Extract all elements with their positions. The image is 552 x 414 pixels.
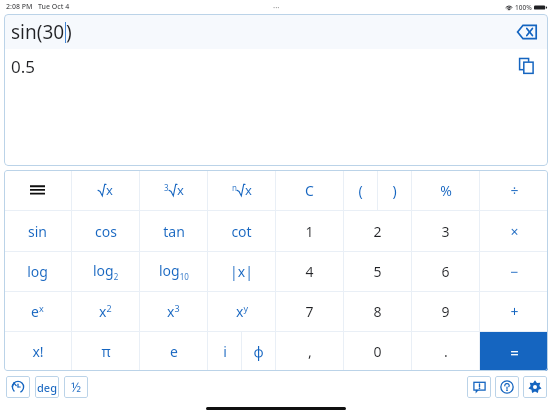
staticText: x2 (99, 302, 112, 321)
button[interactable]: i (208, 332, 241, 371)
button[interactable]: = (480, 332, 548, 371)
button[interactable]: Send feedback (467, 376, 491, 398)
button[interactable]: sin(30 (4, 14, 548, 49)
staticText: 7 (305, 302, 314, 321)
staticText: × (510, 222, 519, 241)
staticText: log (27, 262, 48, 281)
staticText: 0 (373, 342, 382, 361)
staticText: C (305, 181, 314, 200)
staticText: cot (231, 222, 252, 241)
staticText: i (223, 342, 227, 361)
button[interactable]: xy (208, 292, 275, 331)
button[interactable]: History (6, 376, 30, 398)
button[interactable]: Backspace (513, 18, 541, 46)
staticText: + (510, 302, 519, 321)
staticText: . (444, 342, 448, 361)
button[interactable]: + (480, 292, 548, 331)
button[interactable]: φ (242, 332, 275, 371)
button[interactable]: % (412, 170, 479, 210)
button[interactable]: 0 (344, 332, 411, 371)
button[interactable]: ex (4, 292, 71, 331)
staticText: 100% (515, 3, 532, 12)
staticText: cos (95, 222, 117, 241)
button[interactable]: 6 (412, 252, 479, 291)
staticText: sin (28, 222, 47, 241)
staticText: 0.5 (11, 55, 36, 78)
button[interactable]: sin (4, 211, 71, 251)
button[interactable]: x2 (72, 292, 139, 331)
staticText: x3 (167, 302, 180, 321)
button[interactable]: − (480, 252, 548, 291)
button[interactable]: ½ (64, 376, 88, 398)
staticText: 5 (373, 262, 382, 281)
button[interactable]: tan (140, 211, 207, 251)
staticText: ( (358, 181, 363, 200)
button[interactable]: . (412, 332, 479, 371)
button[interactable]: Menu (4, 170, 71, 210)
staticText: 6 (441, 262, 450, 281)
staticText: 2:08 PM (6, 2, 33, 12)
staticText: 2 (373, 222, 382, 241)
button[interactable]: , (276, 332, 343, 371)
button[interactable]: Cube root (140, 170, 207, 210)
button[interactable]: 9 (412, 292, 479, 331)
staticText: φ (253, 342, 264, 361)
staticText: ) (392, 181, 397, 200)
staticText: ex (31, 302, 44, 321)
button[interactable]: cot (208, 211, 275, 251)
button[interactable]: cos (72, 211, 139, 251)
staticText: Tue Oct 4 (38, 2, 70, 12)
button[interactable]: 7 (276, 292, 343, 331)
button[interactable]: |x| (208, 252, 275, 291)
staticText: 3 (164, 182, 169, 193)
button[interactable]: Nth root (208, 170, 275, 210)
staticText: tan (163, 222, 185, 241)
staticText: − (510, 262, 519, 281)
button[interactable]: Copy result (512, 52, 540, 80)
button[interactable]: 1 (276, 211, 343, 251)
button[interactable]: ÷ (480, 170, 548, 210)
button[interactable]: log10 (140, 252, 207, 291)
button[interactable]: 5 (344, 252, 411, 291)
button[interactable]: Help (495, 376, 519, 398)
staticText: ) (66, 19, 72, 45)
button[interactable]: x3 (140, 292, 207, 331)
staticText: deg (37, 380, 57, 395)
staticText: |x| (230, 262, 253, 281)
staticText: sin(30 (11, 19, 65, 45)
staticText: 1 (305, 222, 314, 241)
button[interactable]: π (72, 332, 139, 371)
button[interactable]: 8 (344, 292, 411, 331)
button[interactable]: 3 (412, 211, 479, 251)
staticText: = (510, 342, 519, 362)
button[interactable]: 2 (344, 211, 411, 251)
staticText: , (308, 342, 312, 361)
staticText: xy (236, 302, 248, 321)
staticText: x! (32, 342, 44, 361)
button[interactable]: Settings (523, 376, 547, 398)
staticText: 9 (441, 302, 450, 321)
button[interactable]: x! (4, 332, 71, 371)
button[interactable]: log2 (72, 252, 139, 291)
staticText: ½ (71, 378, 82, 396)
staticText: 8 (373, 302, 382, 321)
button[interactable]: log (4, 252, 71, 291)
staticText: log10 (159, 261, 189, 283)
staticText: ÷ (510, 181, 519, 200)
staticText: e (170, 342, 178, 361)
staticText: 4 (305, 262, 314, 281)
button[interactable]: deg (35, 376, 59, 398)
button[interactable]: × (480, 211, 548, 251)
staticText: π (101, 342, 111, 361)
button[interactable]: C (276, 170, 343, 210)
staticText: n (232, 182, 237, 193)
button[interactable]: ( (344, 170, 377, 210)
staticText: 3 (441, 222, 450, 241)
button[interactable]: e (140, 332, 207, 371)
staticText: x (106, 181, 113, 199)
button[interactable]: 4 (276, 252, 343, 291)
staticText: log2 (93, 261, 119, 283)
staticText: ··· (273, 2, 280, 13)
button[interactable]: ) (378, 170, 411, 210)
button[interactable]: Square root (72, 170, 139, 210)
